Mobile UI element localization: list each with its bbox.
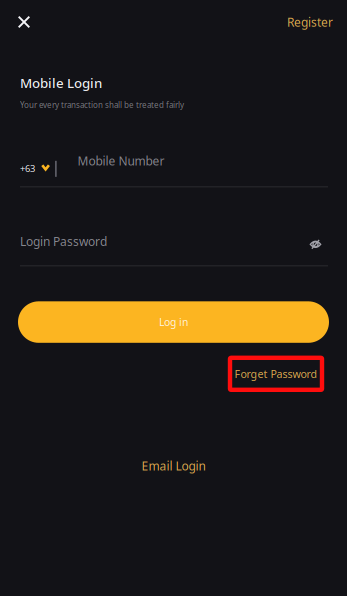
staticText: Mobile Login (20, 74, 102, 92)
button[interactable]: Log in (18, 301, 329, 343)
staticText: Register (287, 14, 333, 30)
staticText: Forget Password (234, 367, 317, 381)
staticText: Mobile Number (78, 153, 165, 169)
staticText: Log in (159, 315, 188, 329)
button[interactable]: Email Login (135, 452, 211, 480)
button[interactable]: Forget Password (230, 358, 322, 390)
button[interactable]: Register (283, 7, 337, 37)
staticText: +63 (20, 162, 35, 174)
staticText: Your every transaction shall be treated … (20, 100, 184, 110)
staticText: Email Login (141, 458, 205, 474)
staticText: Login Password (20, 233, 107, 249)
button[interactable]: Close (9, 7, 39, 37)
button[interactable]: Show password (304, 228, 327, 254)
